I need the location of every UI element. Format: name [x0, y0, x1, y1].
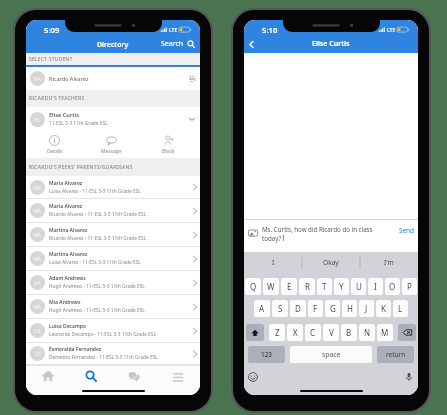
- button[interactable]: Send: [399, 226, 414, 235]
- button[interactable]: M: [377, 324, 393, 341]
- staticText: Y: [339, 281, 344, 292]
- staticText: A: [259, 303, 265, 314]
- button[interactable]: Okay: [302, 252, 360, 273]
- staticText: F: [313, 303, 318, 314]
- button[interactable]: EF: [26, 343, 200, 364]
- staticText: Details: [47, 148, 63, 155]
- staticText: Search: [161, 39, 184, 49]
- staticText: Elise Curtis: [312, 39, 350, 49]
- button[interactable]: K: [376, 300, 391, 317]
- button[interactable]: 123: [248, 346, 285, 363]
- button[interactable]: H: [342, 300, 357, 317]
- button[interactable]: MA: [26, 176, 200, 198]
- button[interactable]: Emoji: [248, 372, 258, 382]
- button[interactable]: F: [308, 300, 323, 317]
- staticText: 5:10: [262, 25, 278, 35]
- staticText: Z: [275, 327, 280, 338]
- staticText: Ms. Curtis, how did Ricardo do in class: [262, 225, 373, 233]
- staticText: Mia Andrews: [49, 299, 81, 306]
- staticText: today?: [262, 234, 282, 242]
- button[interactable]: Dictation: [404, 372, 414, 382]
- staticText: LD: [34, 327, 41, 334]
- button[interactable]: V: [323, 324, 339, 341]
- button[interactable]: L: [393, 300, 408, 317]
- staticText: Luisa Decampo: [49, 323, 87, 330]
- button[interactable]: R: [299, 278, 315, 295]
- button[interactable]: Details: [26, 131, 83, 158]
- button[interactable]: MA: [26, 247, 200, 270]
- staticText: Hugh Andrews - 11-ESL 3-3 11th Grade ESL: [49, 307, 145, 314]
- button[interactable]: P: [402, 278, 417, 295]
- staticText: Directory: [97, 40, 129, 49]
- button[interactable]: MA: [26, 223, 200, 246]
- button[interactable]: MA: [26, 199, 200, 222]
- button[interactable]: Search: [69, 365, 112, 395]
- button[interactable]: Shift: [246, 324, 264, 341]
- staticText: E: [287, 281, 292, 292]
- button[interactable]: W: [263, 278, 279, 295]
- staticText: MA: [33, 255, 42, 262]
- button[interactable]: EC: [26, 107, 200, 131]
- button[interactable]: J: [359, 300, 374, 317]
- staticText: Maria Alvarez: [49, 203, 83, 210]
- button[interactable]: D: [290, 300, 306, 317]
- staticText: B: [346, 327, 352, 338]
- button[interactable]: Home: [26, 365, 69, 395]
- staticText: R: [305, 281, 310, 292]
- staticText: Esmeralda Fernandez: [49, 346, 102, 353]
- staticText: I'm: [384, 258, 394, 267]
- button[interactable]: U: [351, 278, 366, 295]
- button[interactable]: Search: [159, 37, 197, 51]
- button[interactable]: E: [281, 278, 297, 295]
- button[interactable]: Menu: [156, 365, 200, 395]
- button[interactable]: O: [385, 278, 400, 295]
- button[interactable]: space: [290, 346, 372, 363]
- staticText: EF: [35, 350, 41, 357]
- button[interactable]: return: [377, 346, 414, 363]
- button[interactable]: AA: [26, 271, 200, 294]
- button[interactable]: RA: [26, 67, 200, 90]
- button[interactable]: Z: [269, 324, 285, 341]
- button[interactable]: C: [305, 324, 321, 341]
- button[interactable]: X: [287, 324, 303, 341]
- staticText: SELECT STUDENT: [29, 56, 73, 63]
- staticText: MA: [33, 231, 42, 238]
- button[interactable]: Y: [334, 278, 349, 295]
- staticText: J: [365, 303, 368, 314]
- staticText: Elise Curtis: [49, 111, 79, 119]
- button[interactable]: Back: [244, 37, 258, 51]
- staticText: Demetrio Fernandez - 11-ESL 3-3 11th Gra…: [49, 354, 158, 361]
- staticText: Leonardo Decampo - 11-ESL 3-3 11th Grade…: [49, 331, 156, 338]
- button[interactable]: I: [244, 252, 302, 273]
- staticText: Adam Andrews: [49, 275, 86, 282]
- staticText: Ricardo Alvarez: [49, 75, 89, 82]
- staticText: Luisa Alvarez - 11-ESL 3-3 11th Grade ES…: [49, 259, 141, 266]
- button[interactable]: LD: [26, 319, 200, 342]
- staticText: RICARDO'S PEERS' PARENTS/GUARDIANS: [29, 164, 133, 171]
- button[interactable]: A: [254, 300, 270, 317]
- button[interactable]: MA: [26, 295, 200, 318]
- staticText: 11-ESL 3-3 11th Grade ESL: [49, 120, 108, 127]
- button[interactable]: Backspace: [398, 324, 416, 341]
- button[interactable]: N: [359, 324, 375, 341]
- staticText: G: [330, 303, 336, 314]
- button[interactable]: B: [341, 324, 357, 341]
- button[interactable]: Block: [140, 131, 197, 158]
- button[interactable]: G: [325, 300, 340, 317]
- button[interactable]: I'm: [360, 252, 418, 273]
- staticText: MA: [33, 207, 42, 214]
- staticText: L: [398, 303, 403, 314]
- button[interactable]: Message: [83, 131, 140, 158]
- staticText: X: [293, 327, 298, 338]
- button[interactable]: Add photo: [248, 228, 258, 238]
- button[interactable]: I: [368, 278, 383, 295]
- button[interactable]: S: [272, 300, 288, 317]
- button[interactable]: Q: [245, 278, 261, 295]
- staticText: W: [267, 281, 275, 292]
- staticText: Q: [250, 281, 257, 292]
- button[interactable]: Messages: [112, 365, 156, 395]
- staticText: Okay: [323, 258, 339, 267]
- staticText: M: [381, 327, 389, 338]
- staticText: P: [407, 281, 412, 292]
- button[interactable]: T: [317, 278, 332, 295]
